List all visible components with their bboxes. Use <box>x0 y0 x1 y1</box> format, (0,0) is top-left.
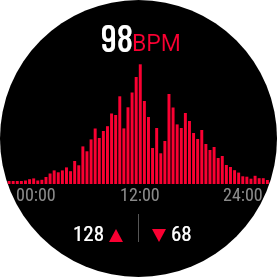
button[interactable]: Minimum heart rate <box>152 222 192 247</box>
staticText: 68 <box>171 222 192 247</box>
staticText: 98 <box>101 14 134 60</box>
staticText: 128 <box>73 222 105 247</box>
staticText: 12:00 <box>120 184 160 205</box>
other: Minimum heart rate <box>152 229 166 242</box>
button[interactable]: 128 <box>73 222 123 247</box>
other: Maximum heart rate <box>109 229 123 242</box>
staticText: BPM <box>132 30 181 57</box>
button[interactable]: 98 <box>101 14 183 60</box>
staticText: 00:00 <box>16 184 56 205</box>
staticText: 24:00 <box>223 184 263 205</box>
